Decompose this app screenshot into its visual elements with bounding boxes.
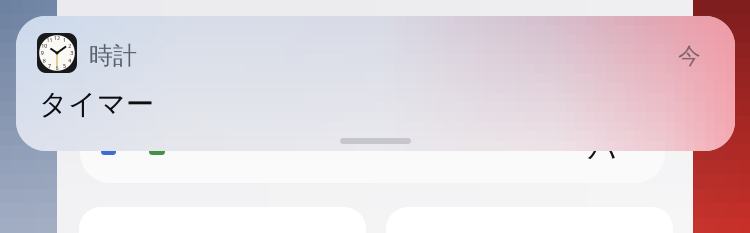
staticText: 4 bbox=[68, 57, 71, 64]
staticText: 12 bbox=[54, 35, 60, 42]
staticText: 今 bbox=[678, 42, 701, 70]
staticText: 5 bbox=[63, 62, 66, 69]
staticText: タイマー bbox=[39, 87, 154, 121]
staticText: 3 bbox=[70, 49, 73, 57]
staticText: 8 bbox=[43, 57, 46, 64]
staticText: 11 bbox=[47, 37, 53, 44]
staticText: 6 bbox=[55, 64, 58, 71]
staticText: 1 bbox=[63, 37, 66, 44]
staticText: 9 bbox=[41, 49, 44, 57]
button[interactable]: 12 bbox=[16, 16, 735, 151]
staticText: 10 bbox=[41, 42, 47, 49]
staticText: バー bbox=[588, 133, 645, 167]
staticText: 時計 bbox=[89, 41, 137, 70]
staticText: 7 bbox=[48, 62, 51, 69]
staticText: 2 bbox=[68, 42, 71, 49]
